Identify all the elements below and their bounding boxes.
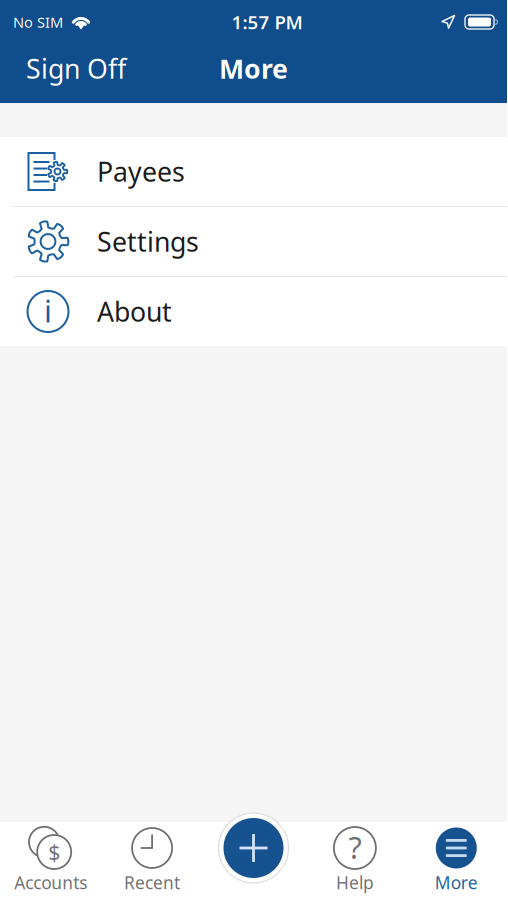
staticText: Payees <box>97 154 185 189</box>
staticText: ? <box>348 827 361 867</box>
button[interactable]: i <box>0 277 507 346</box>
staticText: No SIM <box>13 12 63 32</box>
staticText: Accounts <box>14 871 87 894</box>
button[interactable]: Payees <box>0 137 507 206</box>
staticText: Sign Off <box>26 51 126 86</box>
staticText: About <box>97 294 172 329</box>
button[interactable]: More <box>406 822 507 900</box>
button[interactable]: ? <box>304 822 406 900</box>
staticText: $ <box>48 838 60 866</box>
button[interactable] <box>203 822 304 900</box>
staticText: More <box>435 871 478 894</box>
staticText: 1:57 PM <box>231 10 302 34</box>
button[interactable]: Recent <box>101 822 203 900</box>
staticText: More <box>219 51 288 86</box>
button[interactable]: Sign Off <box>18 45 134 92</box>
staticText: i <box>44 290 52 331</box>
staticText: Settings <box>97 224 199 259</box>
button[interactable]: $ <box>0 822 101 900</box>
staticText: Help <box>336 871 374 894</box>
button[interactable]: Add <box>218 813 288 883</box>
staticText: Recent <box>124 871 180 894</box>
button[interactable]: Settings <box>0 207 507 276</box>
